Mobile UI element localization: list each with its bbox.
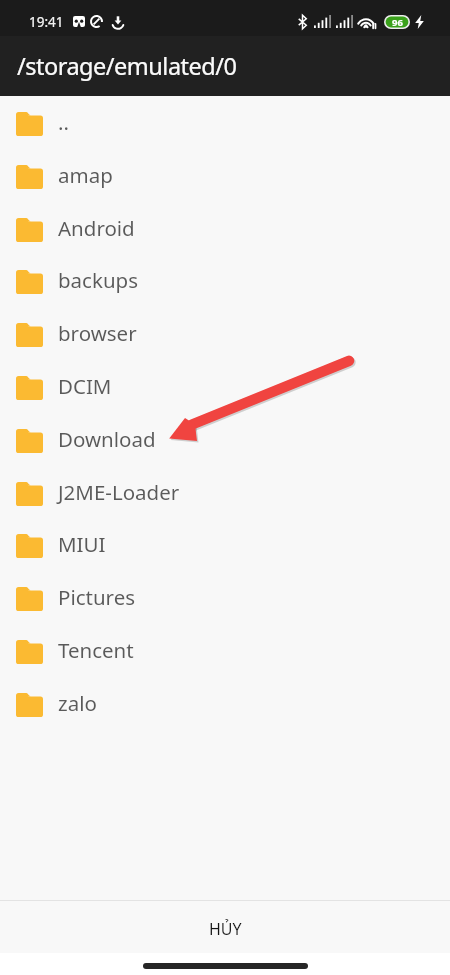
- button[interactable]: Folder Pictures: [0, 572, 450, 625]
- button[interactable]: Folder amap: [0, 150, 450, 203]
- staticText: Android: [58, 214, 135, 242]
- staticText: DCIM: [58, 372, 112, 400]
- staticText: browser: [58, 319, 137, 347]
- staticText: J2ME-Loader: [58, 478, 180, 506]
- staticText: Pictures: [58, 583, 136, 611]
- staticText: zalo: [58, 689, 97, 717]
- button[interactable]: Folder ..: [0, 97, 450, 150]
- button[interactable]: Folder Download: [0, 414, 450, 467]
- button[interactable]: Folder MIUI: [0, 519, 450, 572]
- button[interactable]: Folder browser: [0, 308, 450, 361]
- staticText: 96: [392, 16, 403, 29]
- staticText: MIUI: [58, 530, 106, 558]
- button[interactable]: Folder zalo: [0, 678, 450, 731]
- button[interactable]: Folder Tencent: [0, 625, 450, 678]
- button[interactable]: Folder Android: [0, 203, 450, 256]
- button[interactable]: HỦY: [0, 901, 450, 953]
- button[interactable]: /storage/emulated/0: [0, 36, 450, 96]
- staticText: ..: [58, 108, 69, 136]
- staticText: Download: [58, 425, 156, 453]
- staticText: backups: [58, 266, 138, 294]
- button[interactable]: Folder J2ME-Loader: [0, 467, 450, 520]
- staticText: /storage/emulated/0: [17, 50, 237, 82]
- staticText: HỦY: [209, 918, 242, 940]
- button[interactable]: Folder backups: [0, 255, 450, 308]
- staticText: 19:41: [29, 13, 64, 31]
- button[interactable]: Folder DCIM: [0, 361, 450, 414]
- staticText: amap: [58, 161, 113, 189]
- staticText: Tencent: [58, 636, 134, 664]
